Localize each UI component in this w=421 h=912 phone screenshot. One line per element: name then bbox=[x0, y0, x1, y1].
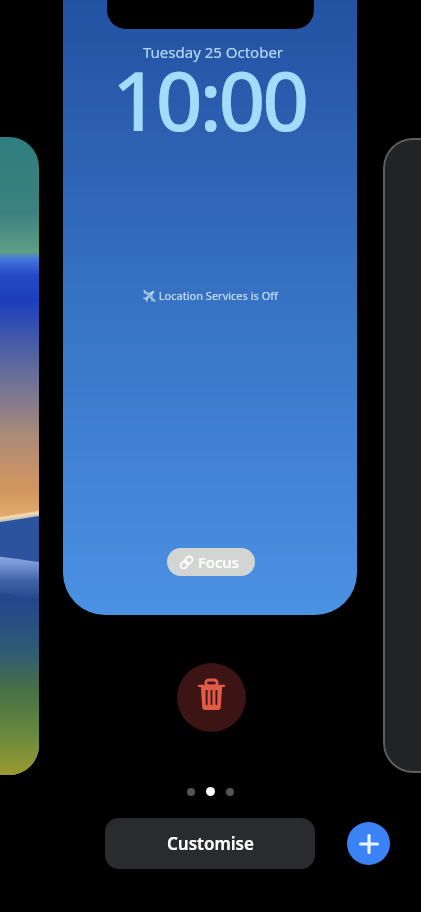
button[interactable] bbox=[63, 0, 357, 615]
button[interactable]: Customise bbox=[105, 818, 315, 869]
button[interactable]: Delete bbox=[177, 663, 246, 732]
staticText: Tuesday 25 October bbox=[143, 42, 284, 62]
button[interactable] bbox=[383, 138, 421, 773]
staticText: 10:00 bbox=[112, 43, 306, 155]
button[interactable]: Focus bbox=[179, 548, 240, 576]
button[interactable]: Add bbox=[347, 822, 390, 865]
button[interactable] bbox=[0, 137, 39, 775]
staticText: Customise bbox=[167, 832, 254, 855]
staticText: Location Services is Off bbox=[156, 288, 278, 303]
staticText: Focus bbox=[194, 552, 240, 572]
